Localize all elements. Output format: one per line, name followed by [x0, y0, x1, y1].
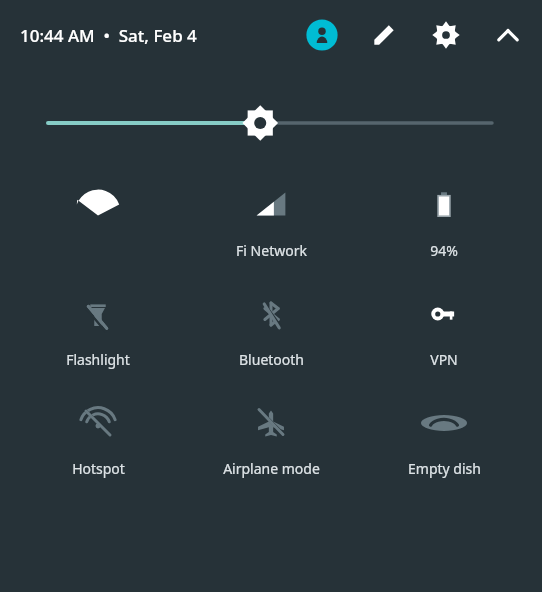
button[interactable]: Cell signal	[196, 181, 346, 260]
staticText: Fi Network	[236, 241, 307, 260]
button[interactable]: Flashlight	[23, 290, 173, 369]
staticText: Empty dish	[408, 459, 481, 478]
staticText: 10:44 AM • Sat, Feb 4	[20, 24, 197, 47]
button[interactable]: Bluetooth	[196, 290, 346, 369]
button[interactable]: Edit	[362, 13, 406, 57]
staticText: VPN	[430, 350, 458, 369]
button[interactable]: Wi-Fi	[23, 181, 173, 241]
staticText: Bluetooth	[239, 350, 304, 369]
staticText: 94%	[430, 241, 458, 260]
button[interactable]: VPN	[369, 290, 519, 369]
button[interactable]: Airplane mode	[196, 399, 346, 478]
staticText: Airplane mode	[223, 459, 320, 478]
button[interactable]: Settings	[424, 13, 468, 57]
button[interactable]: Hotspot	[23, 399, 173, 478]
button[interactable]: Empty dish	[369, 399, 519, 478]
staticText: Flashlight	[66, 350, 130, 369]
button[interactable]: Battery	[369, 181, 519, 260]
button[interactable]: Account	[300, 13, 344, 57]
button[interactable]: Collapse	[486, 13, 530, 57]
staticText: Hotspot	[72, 459, 125, 478]
button[interactable]: Brightness	[0, 103, 542, 143]
